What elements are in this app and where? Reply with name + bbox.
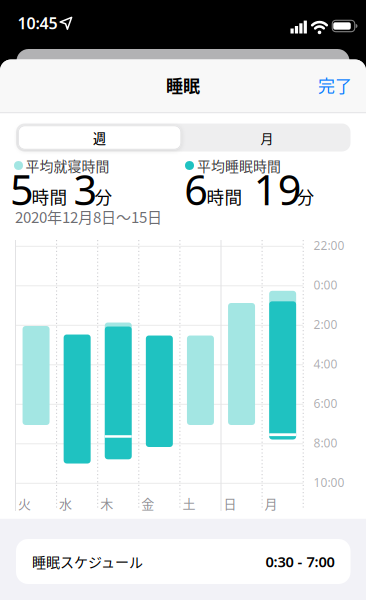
staticText: 土 <box>182 494 195 512</box>
button[interactable]: 週 <box>18 125 181 149</box>
staticText: 月 <box>260 128 273 147</box>
staticText: 2020年12月8日〜15日 <box>15 206 162 227</box>
staticText: 分 <box>296 183 314 209</box>
staticText: 完了 <box>318 73 352 97</box>
staticText: 22:00 <box>313 237 344 253</box>
staticText: 5 <box>10 162 34 217</box>
staticText: 日 <box>223 494 236 512</box>
staticText: 6 <box>184 162 208 217</box>
staticText: 水 <box>59 494 72 512</box>
staticText: 0:30 - 7:00 <box>265 552 334 571</box>
staticText: 睡眠スケジュール <box>32 551 143 572</box>
staticText: 6:00 <box>313 395 337 411</box>
button[interactable]: 月 <box>185 125 348 149</box>
staticText: 10:00 <box>313 474 344 490</box>
staticText: 時間 <box>206 183 242 209</box>
staticText: 木 <box>100 494 113 512</box>
staticText: 平均就寝時間 <box>25 155 109 176</box>
button[interactable]: 完了 <box>282 63 352 107</box>
staticText: 時間 <box>31 183 67 209</box>
staticText: 2:00 <box>313 316 337 332</box>
staticText: 睡眠 <box>166 73 200 97</box>
staticText: 0:00 <box>313 277 337 293</box>
staticText: 10:45 <box>17 12 57 34</box>
staticText: 4:00 <box>313 356 337 372</box>
staticText: 週 <box>93 128 106 147</box>
staticText: 火 <box>18 494 31 512</box>
staticText: 平均睡眠時間 <box>197 155 281 176</box>
staticText: 8:00 <box>313 435 337 451</box>
staticText: 月 <box>265 494 278 512</box>
button[interactable]: 睡眠スケジュール <box>16 539 350 584</box>
staticText: 分 <box>94 183 112 209</box>
staticText: 金 <box>141 494 154 512</box>
staticText: 3 <box>73 162 97 217</box>
staticText: 19 <box>254 162 302 217</box>
